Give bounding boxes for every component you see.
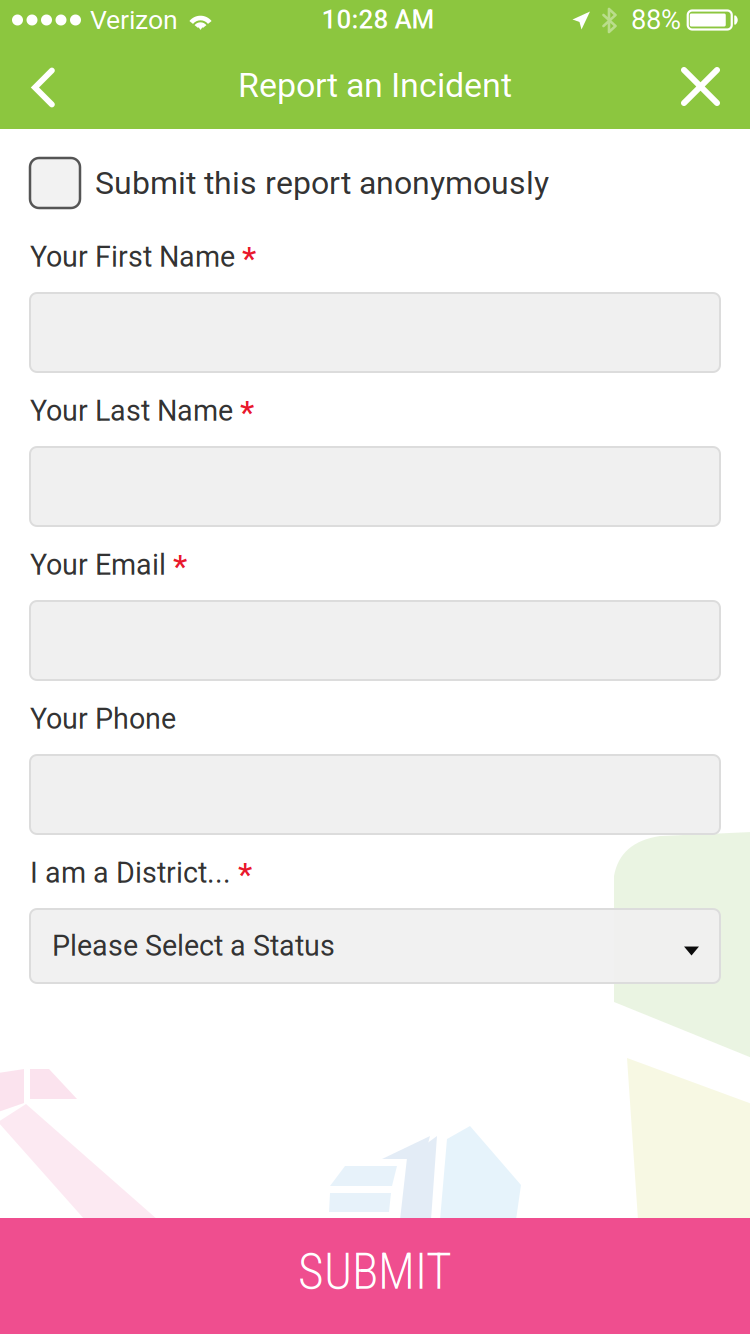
button[interactable]: Back (0, 40, 85, 129)
staticText: Your Email (30, 548, 166, 582)
staticText: * (242, 239, 256, 277)
button[interactable]: SUBMIT (0, 1218, 750, 1334)
staticText: Your Phone (30, 702, 176, 736)
staticText: Please Select a Status (52, 929, 335, 963)
staticText: * (240, 393, 254, 431)
button[interactable] (30, 447, 720, 526)
staticText: Verizon (90, 4, 178, 36)
button[interactable] (30, 293, 720, 372)
button[interactable]: Close (651, 40, 750, 129)
button[interactable] (30, 755, 720, 834)
staticText: * (238, 855, 252, 893)
button[interactable] (30, 601, 720, 680)
staticText: Report an Incident (238, 66, 512, 105)
staticText: 88% (631, 4, 681, 36)
staticText: Your Last Name (30, 394, 233, 428)
staticText: * (173, 547, 187, 585)
staticText: SUBMIT (298, 1243, 452, 1301)
button[interactable]: Please Select a Status (30, 909, 720, 983)
staticText: I am a District... (30, 856, 231, 890)
staticText: Your First Name (30, 240, 235, 274)
button[interactable]: Submit this report anonymously (0, 129, 750, 208)
staticText: Submit this report anonymously (95, 164, 549, 202)
staticText: 10:28 AM (321, 4, 434, 35)
